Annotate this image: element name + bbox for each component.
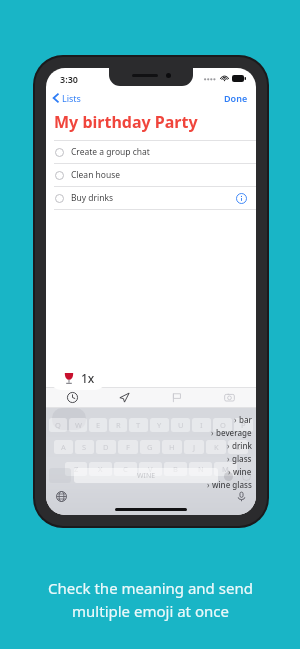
staticText: drink — [232, 440, 252, 451]
button[interactable]: G — [140, 440, 160, 454]
button[interactable]: Y — [150, 418, 169, 432]
staticText: Done — [224, 92, 248, 104]
staticText: Q — [55, 420, 61, 430]
staticText: WINE — [137, 471, 156, 481]
staticText: B — [173, 464, 178, 474]
staticText: I — [200, 420, 203, 430]
button[interactable]: O — [213, 418, 232, 432]
button[interactable]: Clean house — [46, 164, 256, 186]
staticText: W — [75, 420, 82, 430]
button[interactable]: B — [164, 462, 187, 476]
staticText: › — [211, 427, 214, 438]
staticText: X — [98, 464, 103, 474]
staticText: P — [241, 420, 246, 430]
staticText: J — [193, 442, 196, 452]
staticText: Create a group chat — [71, 146, 150, 158]
staticText: › — [227, 453, 230, 464]
button[interactable]: R — [109, 418, 127, 432]
button[interactable]: C — [114, 462, 137, 476]
staticText: My birthday Party — [54, 111, 198, 133]
staticText: H — [169, 442, 175, 452]
staticText: Clean house — [71, 169, 121, 181]
staticText: M — [222, 464, 229, 474]
button[interactable]: S — [75, 440, 94, 454]
button[interactable]: Done — [224, 92, 248, 104]
button[interactable]: Create a group chat — [46, 141, 256, 163]
staticText: › — [228, 466, 231, 477]
staticText: O — [220, 420, 226, 430]
staticText: E — [96, 420, 101, 430]
staticText: wine — [233, 466, 252, 477]
button[interactable]: H — [162, 440, 182, 454]
staticText: Check the meaning and send — [48, 578, 253, 598]
staticText: T — [136, 420, 141, 430]
button[interactable]: Z — [65, 462, 87, 476]
staticText: V — [148, 464, 153, 474]
button[interactable]: 1x — [49, 365, 107, 390]
staticText: › — [234, 414, 237, 425]
button[interactable]: Delete — [221, 469, 235, 483]
staticText: 1x — [81, 370, 95, 386]
staticText: U — [178, 420, 184, 430]
button[interactable]: History — [46, 388, 98, 407]
staticText: Y — [157, 420, 162, 430]
button[interactable]: More info — [236, 193, 247, 204]
button[interactable]: D — [96, 440, 116, 454]
button[interactable]: Flag — [150, 388, 203, 407]
button[interactable]: › — [227, 440, 252, 451]
staticText: F — [126, 442, 130, 452]
staticText: bar — [239, 414, 252, 425]
button[interactable]: W — [69, 418, 87, 432]
staticText: › — [207, 479, 210, 490]
staticText: Buy drinks — [71, 192, 114, 204]
button[interactable]: Numbers — [49, 468, 71, 483]
staticText: L — [236, 442, 240, 452]
button[interactable]: A — [54, 440, 73, 454]
button[interactable]: F — [118, 440, 138, 454]
staticText: wine glass — [212, 479, 252, 490]
staticText: A — [61, 442, 66, 452]
button[interactable]: T — [129, 418, 148, 432]
button[interactable]: U — [171, 418, 190, 432]
staticText: 3:30 — [60, 73, 78, 85]
button[interactable]: › — [228, 466, 252, 477]
button[interactable]: Emoji — [239, 469, 253, 483]
button[interactable]: Switch keyboard — [54, 489, 68, 503]
staticText: K — [214, 442, 219, 452]
staticText: multiple emoji at once — [72, 601, 229, 621]
button[interactable]: E — [89, 418, 107, 432]
button[interactable]: I — [192, 418, 211, 432]
staticText: beverage — [216, 427, 252, 438]
button[interactable]: Q — [49, 418, 67, 432]
button[interactable]: › — [211, 427, 252, 438]
staticText: Z — [74, 464, 79, 474]
button[interactable]: › — [234, 414, 252, 425]
button[interactable]: Dictate — [234, 489, 248, 503]
button[interactable]: › — [227, 453, 252, 464]
staticText: N — [198, 464, 204, 474]
button[interactable]: Lists — [53, 92, 81, 104]
button[interactable]: Buy drinks — [46, 187, 256, 209]
staticText: G — [147, 442, 153, 452]
staticText: D — [103, 442, 109, 452]
staticText: Lists — [62, 92, 81, 104]
button[interactable]: V — [139, 462, 162, 476]
staticText: C — [123, 464, 128, 474]
button[interactable]: N — [189, 462, 212, 476]
button[interactable]: M — [214, 462, 237, 476]
button[interactable]: WINE — [74, 468, 218, 483]
button[interactable]: Send — [98, 388, 150, 407]
button[interactable]: › — [207, 479, 252, 490]
staticText: R — [116, 420, 121, 430]
button[interactable]: K — [206, 440, 226, 454]
staticText: › — [227, 440, 230, 451]
button[interactable]: Camera — [203, 388, 256, 407]
button[interactable]: X — [89, 462, 112, 476]
button[interactable]: L — [228, 440, 248, 454]
staticText: S — [82, 442, 87, 452]
staticText: glass — [232, 453, 252, 464]
button[interactable]: P — [234, 418, 253, 432]
